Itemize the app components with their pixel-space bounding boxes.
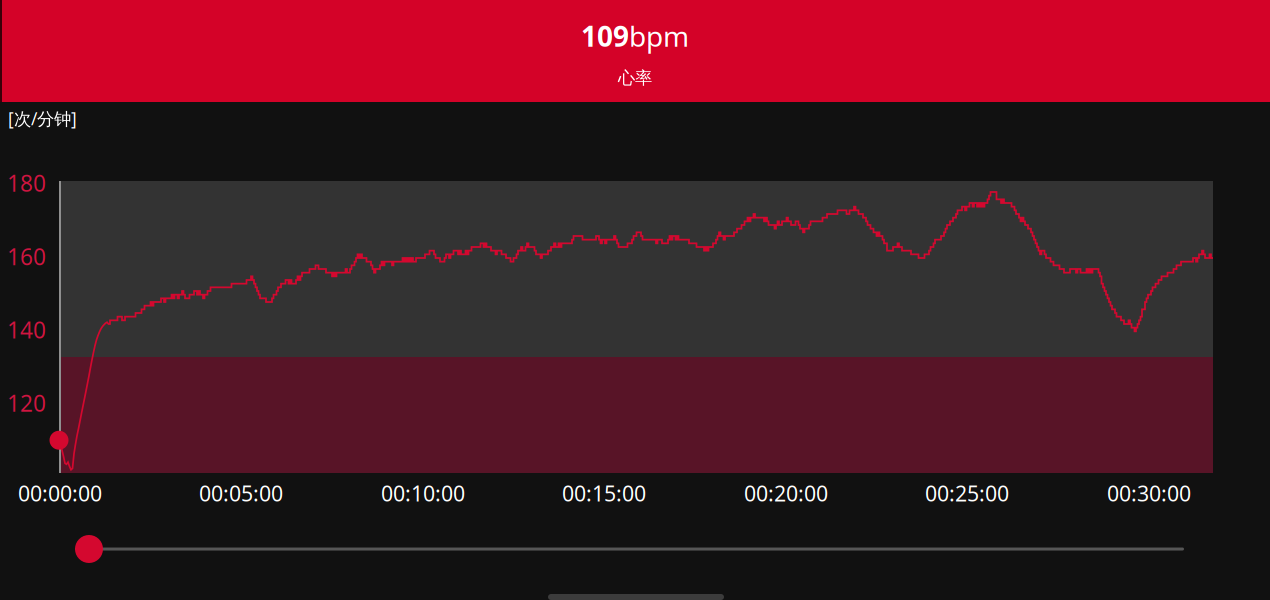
staticText: 00:05:00 bbox=[199, 479, 283, 507]
staticText: bpm bbox=[629, 17, 689, 55]
staticText: 00:15:00 bbox=[562, 479, 646, 507]
staticText: 120 bbox=[7, 388, 46, 418]
staticText: 140 bbox=[7, 315, 46, 345]
staticText: 00:00:00 bbox=[18, 479, 102, 507]
staticText: 00:20:00 bbox=[744, 479, 828, 507]
staticText: 00:30:00 bbox=[1107, 479, 1191, 507]
staticText: 00:10:00 bbox=[381, 479, 465, 507]
staticText: 00:25:00 bbox=[925, 479, 1009, 507]
staticText: 180 bbox=[7, 168, 46, 198]
staticText: [次/分钟] bbox=[8, 107, 77, 130]
button[interactable]: Playback position bbox=[75, 535, 1184, 563]
staticText: 160 bbox=[7, 241, 46, 271]
staticText: 心率 bbox=[618, 67, 652, 89]
staticText: 109 bbox=[581, 17, 629, 55]
